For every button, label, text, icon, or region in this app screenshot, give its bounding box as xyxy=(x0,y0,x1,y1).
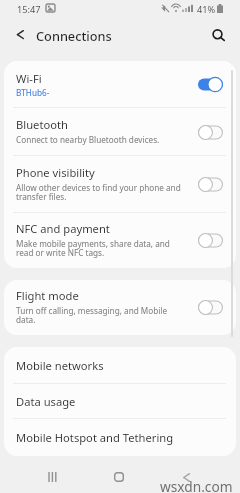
staticText: Mobile networks xyxy=(16,358,104,373)
staticText: Wi-Fi xyxy=(16,71,42,86)
staticText: Turn off calling, messaging, and Mobile … xyxy=(16,305,168,325)
button[interactable]: Bluetooth xyxy=(4,108,236,156)
staticText: Phone visibility xyxy=(16,165,95,180)
staticText: wsxdn.com xyxy=(160,477,233,493)
button[interactable]: Switch off xyxy=(198,300,223,315)
button[interactable]: Back xyxy=(11,24,30,43)
button[interactable]: Data usage xyxy=(4,384,236,419)
button[interactable]: Switch on xyxy=(198,77,223,92)
button[interactable]: Mobile Hotspot and Tethering xyxy=(4,419,236,456)
staticText: NFC and payment xyxy=(16,221,110,236)
button[interactable]: Switch off xyxy=(198,125,223,140)
button[interactable]: Flight mode xyxy=(4,280,236,335)
button[interactable]: Phone visibility xyxy=(4,156,236,213)
button[interactable]: Home xyxy=(103,461,135,493)
button[interactable]: Mobile networks xyxy=(4,347,236,384)
staticText: Bluetooth xyxy=(16,117,68,132)
button[interactable]: NFC and payment xyxy=(4,213,236,268)
button[interactable]: Wi-Fi xyxy=(4,61,236,107)
staticText: Connect to nearby Bluetooth devices. xyxy=(16,134,160,145)
staticText: BTHub6- xyxy=(16,87,50,98)
staticText: Mobile Hotspot and Tethering xyxy=(16,430,174,445)
staticText: Connections xyxy=(36,27,112,44)
button[interactable]: Recents xyxy=(36,461,68,493)
staticText: Make mobile payments, share data, and re… xyxy=(16,238,170,258)
staticText: Data usage xyxy=(16,394,76,409)
staticText: Flight mode xyxy=(16,288,79,303)
staticText: 15:47 xyxy=(17,3,41,16)
button[interactable]: Back xyxy=(170,461,202,493)
staticText: Allow other devices to find your phone a… xyxy=(16,182,181,202)
button[interactable]: Switch off xyxy=(198,177,223,192)
staticText: 41% xyxy=(197,3,216,16)
button[interactable]: Switch off xyxy=(198,233,223,248)
button[interactable]: Search xyxy=(208,25,228,45)
